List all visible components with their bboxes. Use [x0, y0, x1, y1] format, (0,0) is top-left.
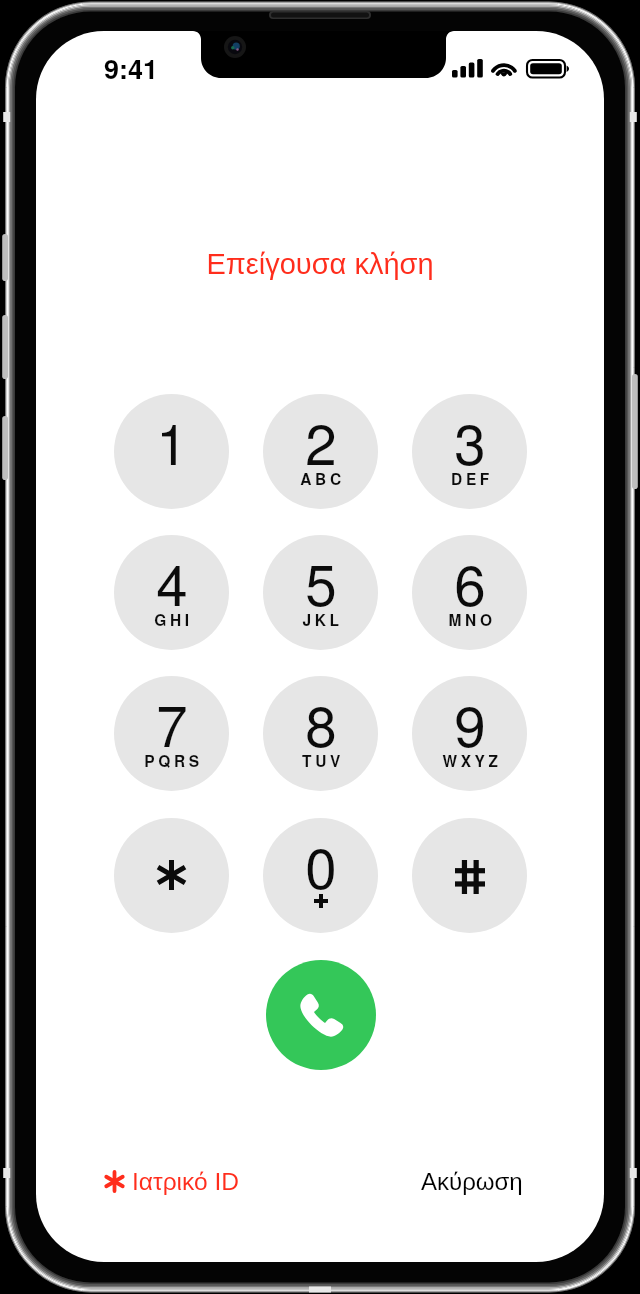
button[interactable]: 3	[412, 394, 527, 509]
staticText: 2	[305, 400, 337, 481]
staticText: 3	[454, 400, 486, 481]
staticText: 9:41	[104, 49, 159, 88]
button[interactable]: Ακύρωση	[421, 1160, 523, 1202]
staticText: WXYZ	[442, 750, 502, 768]
staticText: Επείγουσα κλήση	[206, 248, 434, 280]
button[interactable]	[412, 818, 527, 933]
button[interactable]: 2	[263, 394, 378, 509]
staticText: Ιατρικό ID	[132, 1168, 239, 1195]
staticText: TUV	[302, 750, 344, 768]
button[interactable]: 1	[114, 394, 229, 509]
staticText: 0	[305, 824, 337, 905]
button[interactable]: Ιατρικό ID	[105, 1160, 239, 1202]
staticText: 5	[305, 541, 337, 622]
staticText: Ακύρωση	[421, 1168, 523, 1195]
button[interactable]	[114, 818, 229, 933]
staticText: 1	[156, 400, 188, 481]
staticText: 7	[156, 682, 188, 763]
staticText: 4	[156, 541, 188, 622]
staticText: GHI	[154, 609, 193, 627]
staticText: MNO	[448, 609, 496, 627]
button[interactable]: 6	[412, 535, 527, 650]
button[interactable]: 4	[114, 535, 229, 650]
button[interactable]: 0	[263, 818, 378, 933]
staticText: ABC	[300, 468, 345, 486]
staticText: 9	[454, 682, 486, 763]
staticText: 6	[454, 541, 486, 622]
button[interactable]: Call	[266, 960, 376, 1070]
button[interactable]: 9	[412, 676, 527, 791]
button[interactable]: 5	[263, 535, 378, 650]
staticText: DEF	[451, 468, 493, 486]
button[interactable]: 7	[114, 676, 229, 791]
staticText: 8	[305, 682, 337, 763]
staticText: JKL	[302, 609, 343, 627]
staticText: PQRS	[144, 750, 203, 768]
button[interactable]: 8	[263, 676, 378, 791]
